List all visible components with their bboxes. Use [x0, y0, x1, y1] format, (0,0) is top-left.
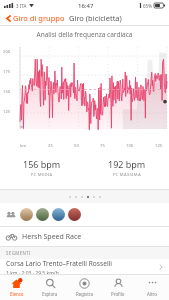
button[interactable]: Atleta: [52, 208, 65, 221]
staticText: 16:47: [78, 2, 94, 10]
staticText: 3 ITA: [16, 3, 27, 9]
button[interactable]: Altro: [135, 275, 169, 300]
staticText: Elenco: [10, 291, 24, 297]
other: Atleti: [5, 209, 17, 221]
staticText: Giro (bicicletta): [69, 13, 122, 23]
staticText: Esplora: [42, 291, 58, 297]
button[interactable]: Esplora: [33, 275, 67, 300]
button[interactable]: Elenco: [0, 275, 33, 300]
staticText: Hersh Speed Race: [22, 232, 82, 242]
button[interactable]: Corsa Lario Trento–Fratelli Rosselli: [0, 259, 169, 274]
staticText: Analisi della frequenza cardiaca: [0, 30, 169, 39]
staticText: Corsa Lario Trento–Fratelli Rosselli: [6, 259, 112, 268]
staticText: 75: [100, 143, 105, 149]
staticText: Registra: [76, 291, 93, 297]
staticText: 175: [3, 69, 11, 75]
staticText: 125: [3, 109, 11, 115]
button[interactable]: Atleta: [20, 208, 33, 221]
staticText: km: [20, 143, 27, 149]
staticText: 156 bpm: [23, 158, 61, 170]
button[interactable]: Atleti: [0, 203, 169, 226]
button[interactable]: Profilo: [101, 275, 135, 300]
staticText: 50: [74, 143, 79, 149]
staticText: Profilo: [111, 291, 125, 297]
staticText: 192 bpm: [108, 158, 146, 170]
button[interactable]: Atleta: [36, 208, 49, 221]
staticText: SEGMENTI: [6, 250, 31, 256]
staticText: 200: [3, 49, 11, 55]
staticText: 25: [48, 143, 53, 149]
staticText: 125: [155, 143, 163, 149]
staticText: FC MASSIMA: [113, 172, 141, 178]
button[interactable]: Registra: [67, 275, 101, 300]
button[interactable]: Giro di gruppo: [3, 11, 67, 25]
staticText: Giro di gruppo: [13, 13, 65, 23]
button[interactable]: Hersh Speed Race: [0, 227, 169, 246]
staticText: 65%: [143, 3, 152, 9]
button[interactable]: Atleta: [68, 208, 81, 221]
staticText: FC MEDIA: [31, 172, 53, 178]
staticText: 100: [126, 143, 134, 149]
staticText: Altro: [147, 291, 157, 297]
staticText: 1 km · 2:03 · 29,5 km/h: [6, 270, 59, 274]
staticText: 150: [3, 89, 11, 95]
